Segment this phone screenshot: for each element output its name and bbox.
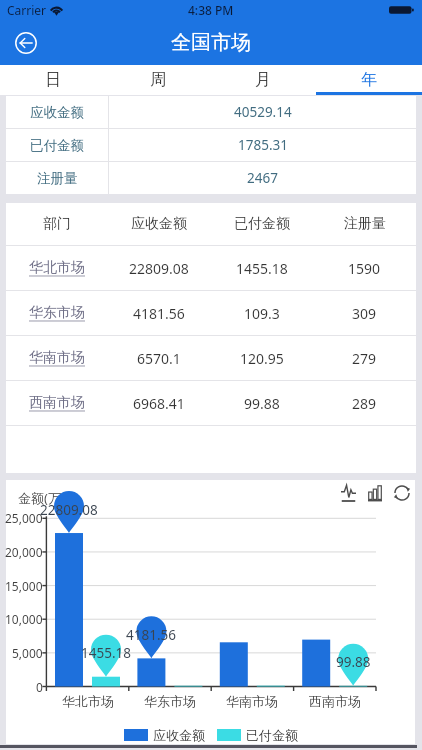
- staticText: 4181.56: [126, 626, 176, 644]
- staticText: 应收金额: [131, 215, 187, 233]
- staticText: 4:38 PM: [188, 2, 234, 18]
- button[interactable]: 日: [0, 65, 105, 95]
- staticText: 华东市场: [144, 693, 196, 709]
- staticText: 15,000: [5, 578, 43, 594]
- staticText: 6570.1: [137, 349, 181, 368]
- staticText: 应收金额: [153, 727, 205, 743]
- staticText: 部门: [43, 215, 71, 233]
- staticText: 华北市场: [62, 693, 114, 709]
- staticText: 289: [352, 394, 377, 413]
- staticText: 已付金额: [30, 137, 84, 154]
- staticText: 279: [352, 349, 377, 368]
- staticText: 西南市场: [29, 394, 85, 412]
- staticText: 1455.18: [236, 259, 288, 278]
- staticText: 已付金额: [234, 215, 290, 233]
- staticText: 已付金额: [246, 727, 298, 743]
- staticText: 注册量: [37, 170, 78, 187]
- staticText: 1455.18: [81, 644, 131, 662]
- staticText: 99.88: [244, 394, 280, 413]
- staticText: 6968.41: [133, 394, 185, 413]
- staticText: 309: [352, 304, 377, 323]
- button[interactable]: Line chart: [335, 483, 361, 503]
- staticText: 5,000: [12, 645, 43, 661]
- staticText: 周: [150, 70, 166, 90]
- staticText: 0: [36, 679, 43, 695]
- staticText: 注册量: [344, 215, 386, 233]
- staticText: 西南市场: [309, 693, 361, 709]
- staticText: 月: [255, 70, 271, 90]
- button[interactable]: Back: [10, 27, 42, 59]
- button[interactable]: Refresh: [389, 482, 415, 504]
- staticText: 华南市场: [29, 349, 85, 367]
- staticText: 应收金额: [30, 104, 84, 121]
- staticText: 22809.08: [129, 259, 189, 278]
- button[interactable]: Bar chart: [362, 483, 388, 503]
- staticText: 25,000: [5, 510, 43, 526]
- staticText: 金额(万元): [18, 489, 78, 507]
- staticText: 109.3: [244, 304, 280, 323]
- staticText: 全国市场: [171, 30, 251, 55]
- staticText: 10,000: [5, 611, 43, 627]
- button[interactable]: 西南市场: [6, 381, 416, 425]
- staticText: 4181.56: [133, 304, 185, 323]
- button[interactable]: 年: [316, 65, 422, 95]
- staticText: 99.88: [336, 653, 371, 671]
- staticText: 22809.08: [40, 501, 98, 519]
- staticText: 2467: [247, 169, 278, 187]
- staticText: 华东市场: [29, 304, 85, 322]
- button[interactable]: 华北市场: [6, 246, 416, 290]
- staticText: 华北市场: [29, 259, 85, 277]
- button[interactable]: 华东市场: [6, 291, 416, 335]
- staticText: 日: [45, 70, 61, 90]
- button[interactable]: 华南市场: [6, 336, 416, 380]
- button[interactable]: 月: [210, 65, 316, 95]
- staticText: 年: [361, 70, 377, 90]
- staticText: Carrier: [7, 2, 47, 18]
- staticText: 20,000: [5, 544, 43, 560]
- staticText: 120.95: [240, 349, 284, 368]
- staticText: 华南市场: [226, 693, 278, 709]
- staticText: 1785.31: [238, 136, 288, 154]
- button[interactable]: 周: [105, 65, 210, 95]
- staticText: 1590: [348, 259, 381, 278]
- staticText: 40529.14: [234, 103, 292, 121]
